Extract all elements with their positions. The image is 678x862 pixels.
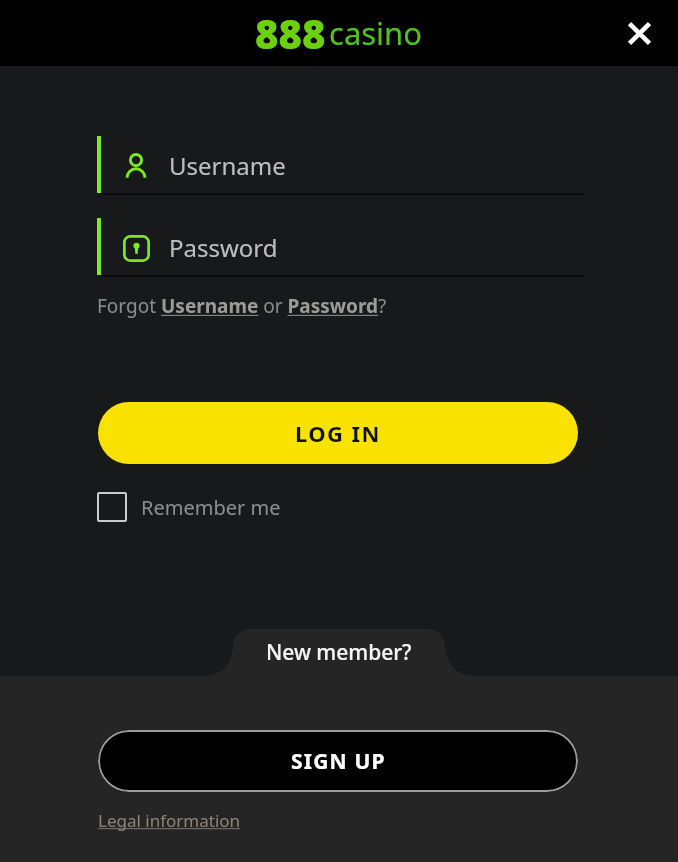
staticText: Forgot Username or Password? [97, 293, 387, 319]
staticText: Password [169, 231, 278, 264]
staticText: Username [169, 149, 286, 182]
button[interactable]: Close [615, 9, 663, 57]
staticText: Legal information [98, 809, 241, 832]
staticText: casino [329, 12, 423, 54]
button[interactable]: Password [97, 218, 580, 277]
staticText: Remember me [141, 494, 281, 521]
button[interactable]: LOG IN [98, 402, 578, 464]
staticText: New member? [266, 638, 412, 667]
staticText: 888 [255, 6, 326, 60]
button[interactable]: Forgot Username or Password? [97, 293, 387, 319]
button[interactable]: New member? [233, 629, 445, 676]
button[interactable]: Legal information [98, 809, 241, 832]
button[interactable]: Username [97, 136, 580, 195]
button[interactable]: Remember me [97, 492, 281, 522]
staticText: LOG IN [295, 418, 381, 448]
button[interactable]: SIGN UP [98, 730, 578, 792]
staticText: SIGN UP [291, 747, 386, 776]
